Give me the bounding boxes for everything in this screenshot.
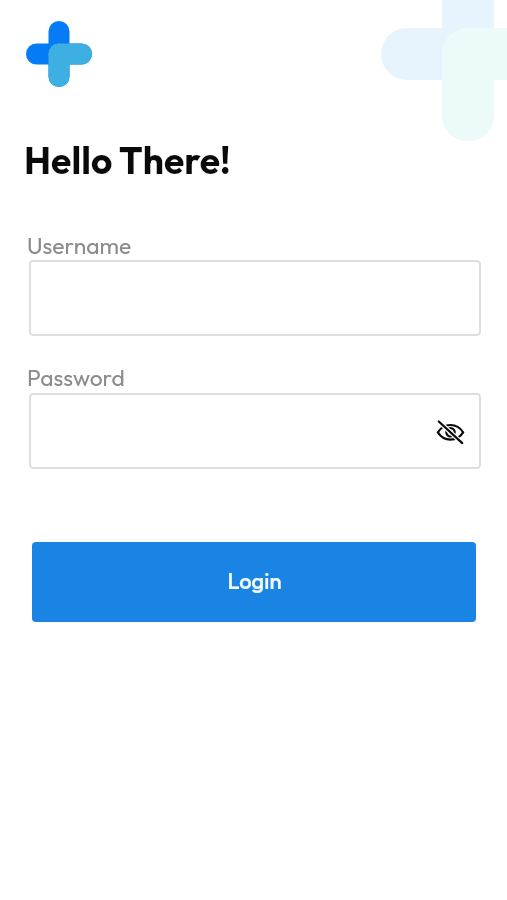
button[interactable]: Show password — [430, 411, 470, 451]
button[interactable] — [29, 260, 481, 336]
staticText: Password — [27, 363, 125, 392]
staticText: Hello There! — [24, 137, 231, 184]
staticText: Login — [227, 567, 282, 595]
staticText: Username — [27, 231, 132, 260]
button[interactable]: Show password — [29, 393, 481, 469]
button[interactable]: Login — [32, 542, 476, 622]
